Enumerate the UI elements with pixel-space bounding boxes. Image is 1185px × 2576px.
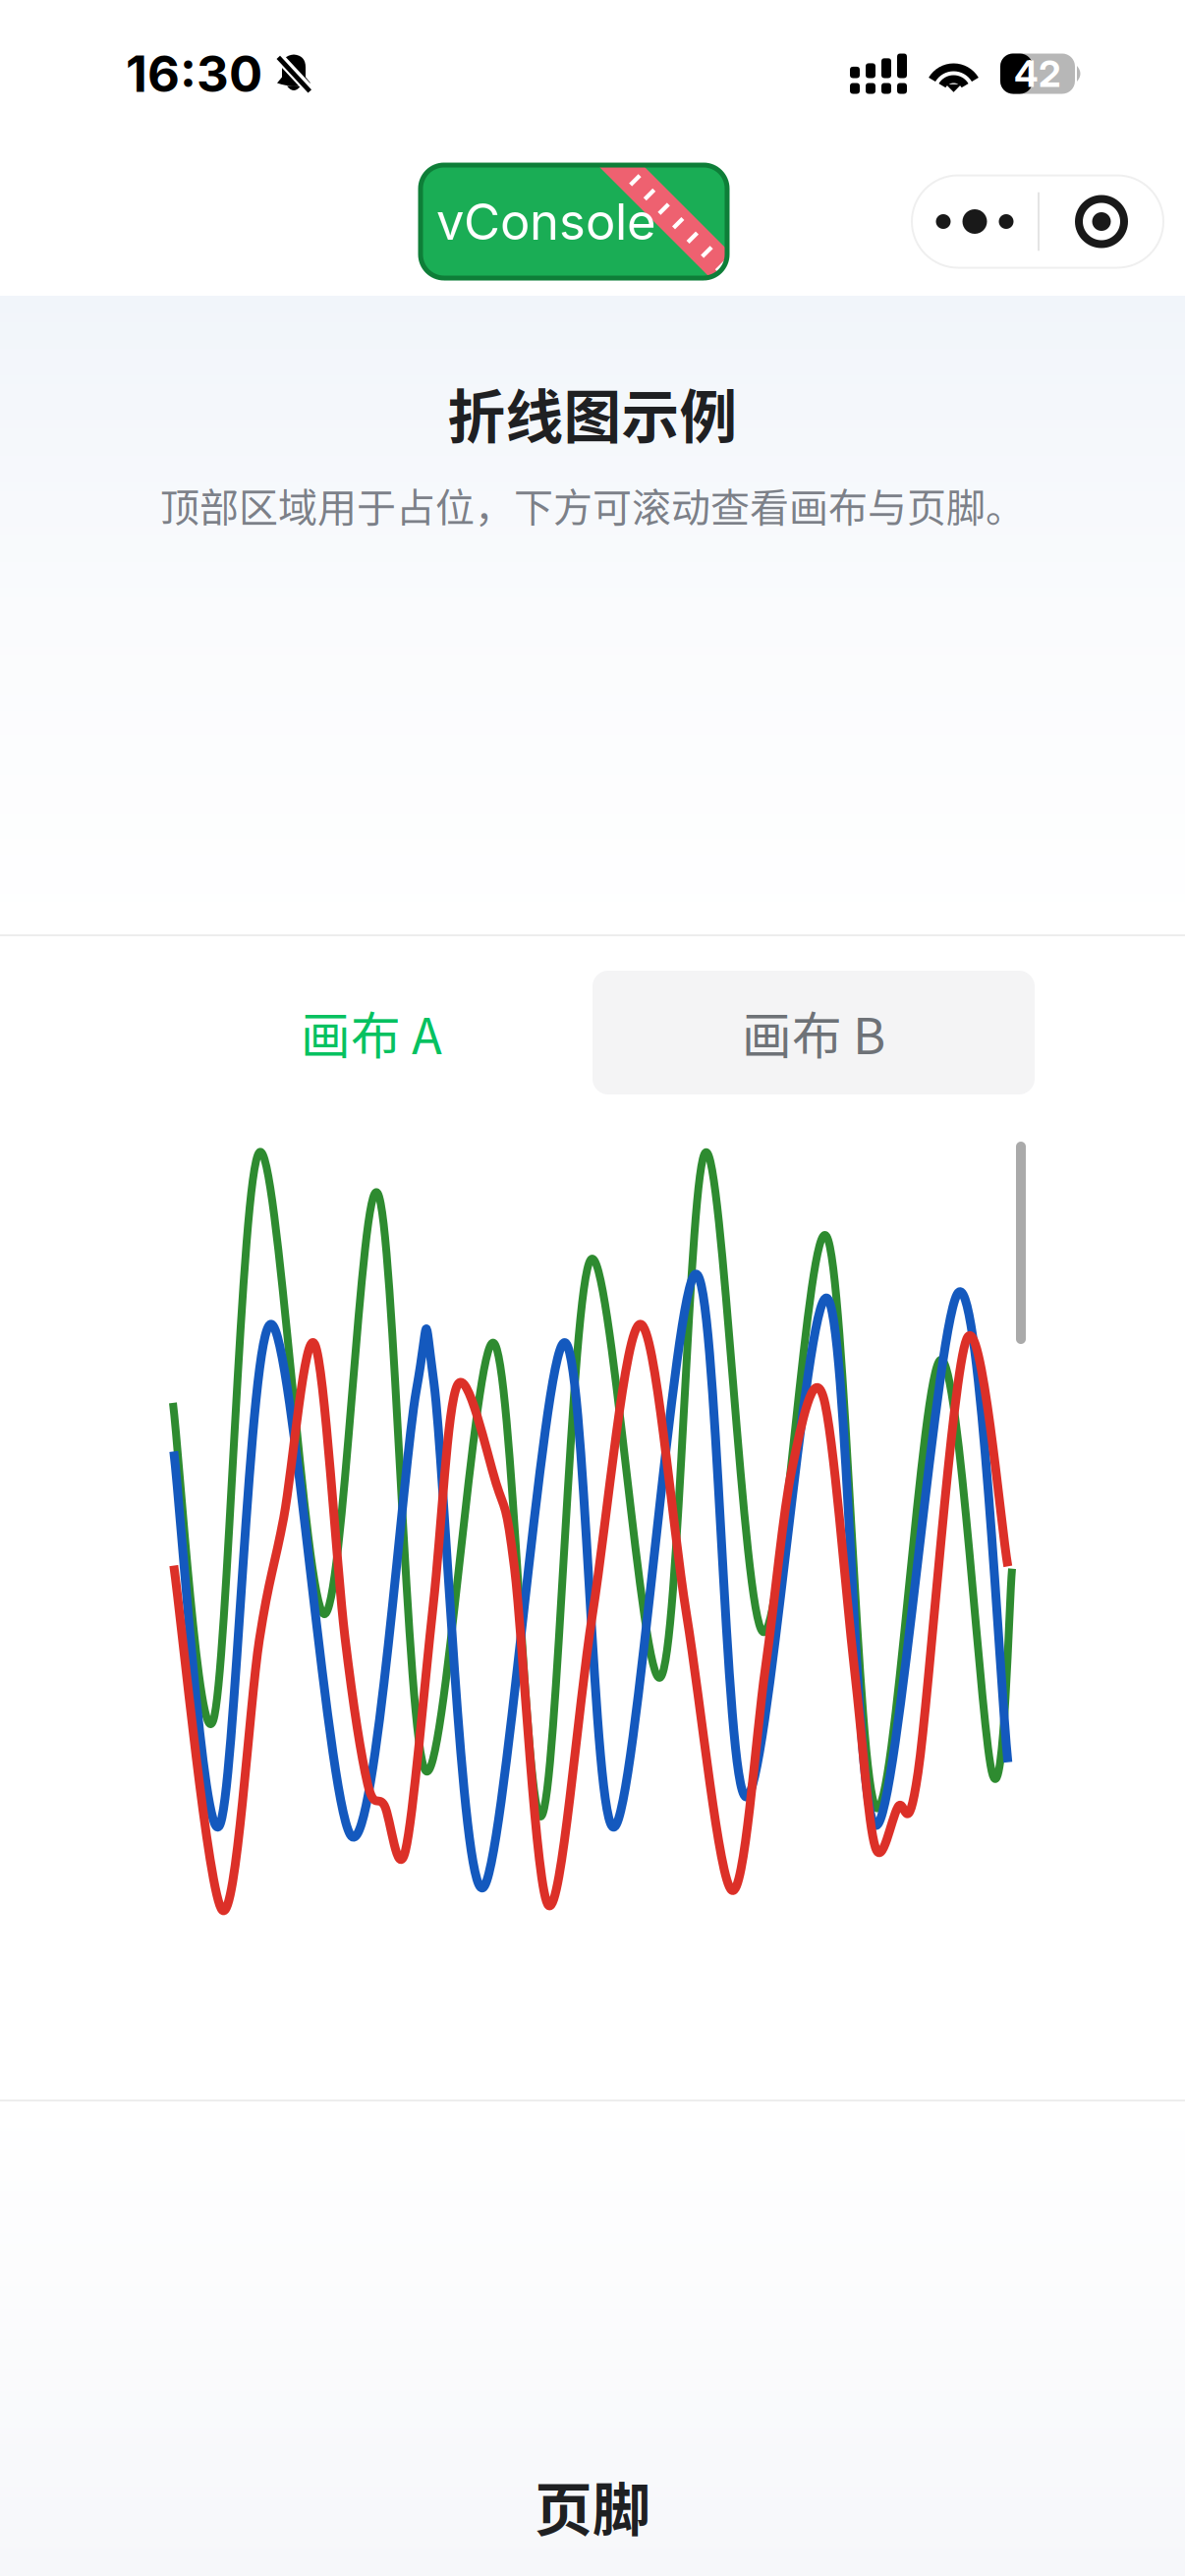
staticText: 页脚 <box>535 2464 650 2548</box>
staticText: 42 <box>1014 51 1061 96</box>
staticText: vConsole <box>436 191 656 252</box>
staticText: 16:30 <box>126 44 262 104</box>
button[interactable]: vConsole <box>421 165 727 278</box>
staticText: 折线图示例 <box>448 371 737 455</box>
button[interactable]: Close mini program <box>1040 175 1163 268</box>
button[interactable]: 画布 A <box>150 971 592 1094</box>
staticText: 顶部区域用于占位，下方可滚动查看画布与页脚。 <box>160 476 1025 533</box>
button[interactable]: 画布 B <box>592 971 1035 1094</box>
button[interactable]: More <box>912 175 1038 268</box>
staticText: 画布 A <box>301 997 442 1069</box>
staticText: 画布 B <box>742 997 885 1069</box>
